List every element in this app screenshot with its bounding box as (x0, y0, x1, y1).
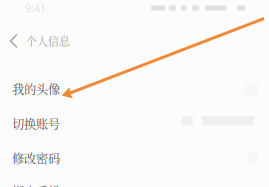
button[interactable]: 修改密码 (0, 141, 269, 176)
staticText: 9:41 (25, 1, 46, 15)
staticText: 修改密码 (12, 149, 60, 167)
button[interactable]: 切换账号 (0, 107, 269, 141)
staticText: 个人信息 (26, 33, 70, 49)
button[interactable]: 我的头像 (0, 72, 269, 107)
staticText: 我的头像 (12, 80, 60, 98)
staticText: 切换账号 (12, 115, 60, 132)
button[interactable]: Back (8, 31, 19, 50)
staticText: 绑定手机 (12, 182, 60, 187)
